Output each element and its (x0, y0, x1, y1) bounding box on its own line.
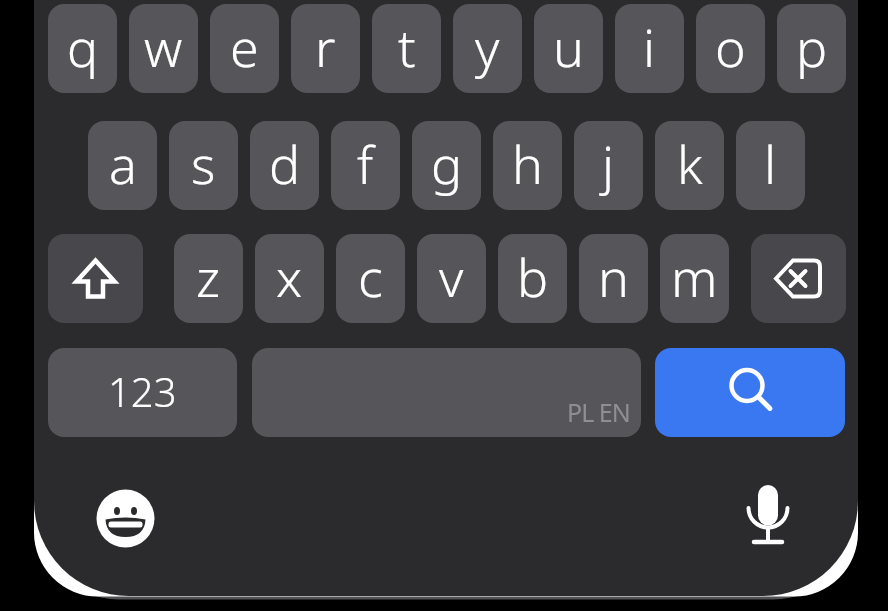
staticText: g (431, 128, 463, 199)
button[interactable]: p (777, 4, 846, 93)
staticText: PL EN (567, 395, 630, 429)
staticText: 123 (108, 364, 177, 418)
button[interactable]: f (331, 121, 400, 210)
staticText: o (715, 11, 746, 82)
button[interactable]: t (372, 4, 441, 93)
staticText: h (512, 128, 543, 199)
staticText: w (144, 11, 183, 82)
button[interactable]: e (210, 4, 279, 93)
staticText: b (517, 241, 549, 312)
staticText: s (191, 128, 216, 199)
button[interactable]: h (493, 121, 562, 210)
button[interactable]: l (736, 121, 805, 210)
button[interactable] (738, 480, 798, 550)
staticText: z (196, 241, 221, 312)
button[interactable]: i (615, 4, 684, 93)
button[interactable] (93, 486, 158, 551)
staticText: u (553, 11, 584, 82)
staticText: q (67, 11, 99, 82)
button[interactable]: n (579, 234, 648, 323)
button[interactable]: v (417, 234, 486, 323)
staticText: y (475, 11, 500, 82)
button[interactable]: d (250, 121, 319, 210)
staticText: c (358, 241, 383, 312)
button[interactable] (655, 348, 845, 437)
button[interactable]: m (660, 234, 729, 323)
staticText: p (796, 11, 828, 82)
button[interactable]: g (412, 121, 481, 210)
staticText: r (315, 11, 336, 82)
button[interactable] (48, 234, 143, 323)
button[interactable]: k (655, 121, 724, 210)
button[interactable]: o (696, 4, 765, 93)
staticText: d (269, 128, 301, 199)
button[interactable]: b (498, 234, 567, 323)
button[interactable]: j (574, 121, 643, 210)
staticText: x (276, 241, 303, 312)
staticText: a (109, 128, 137, 199)
staticText: j (602, 128, 615, 199)
button[interactable]: PL EN (252, 348, 641, 437)
button[interactable]: c (336, 234, 405, 323)
button[interactable]: u (534, 4, 603, 93)
staticText: t (398, 11, 416, 82)
staticText: i (643, 11, 656, 82)
staticText: v (439, 241, 464, 312)
button[interactable]: s (169, 121, 238, 210)
staticText: m (671, 241, 718, 312)
button[interactable]: r (291, 4, 360, 93)
button[interactable]: w (129, 4, 198, 93)
button[interactable]: z (174, 234, 243, 323)
staticText: e (230, 11, 259, 82)
staticText: f (357, 128, 374, 199)
button[interactable]: q (48, 4, 117, 93)
button[interactable]: x (255, 234, 324, 323)
button[interactable]: a (88, 121, 157, 210)
staticText: k (677, 128, 703, 199)
button[interactable] (751, 234, 846, 323)
button[interactable]: 123 (48, 348, 237, 437)
staticText: l (764, 128, 777, 199)
button[interactable]: y (453, 4, 522, 93)
staticText: n (598, 241, 629, 312)
